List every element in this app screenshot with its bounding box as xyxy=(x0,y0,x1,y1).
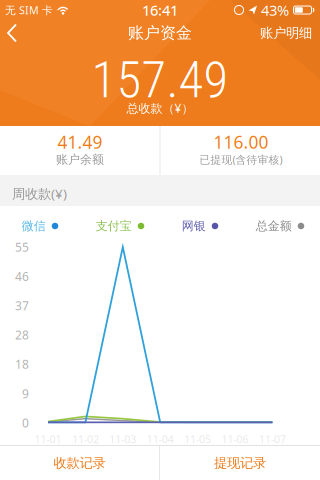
staticText: 11-03 xyxy=(109,432,136,446)
staticText: 55 xyxy=(15,239,29,255)
staticText: 总收款（¥） xyxy=(126,100,193,116)
staticText: 37 xyxy=(15,298,29,313)
button[interactable]: 提现记录 xyxy=(160,446,320,480)
staticText: 微信 xyxy=(22,219,46,233)
staticText: 收款记录 xyxy=(53,455,105,471)
staticText: 提现记录 xyxy=(214,455,266,471)
staticText: 43% xyxy=(261,0,289,20)
button[interactable]: 账户明细 xyxy=(260,25,312,41)
button[interactable]: 收款记录 xyxy=(0,446,159,480)
staticText: 11-05 xyxy=(184,432,211,446)
staticText: 账户资金 xyxy=(128,23,192,43)
staticText: 已提现(含待审核) xyxy=(199,152,282,167)
button[interactable] xyxy=(6,23,18,42)
staticText: 41.49 xyxy=(57,130,102,153)
staticText: 9 xyxy=(22,385,29,401)
staticText: 16:41 xyxy=(142,0,178,20)
staticText: 账户明细 xyxy=(260,25,312,41)
staticText: 总金额 xyxy=(256,219,292,233)
staticText: 11-02 xyxy=(72,432,99,446)
staticText: 支付宝 xyxy=(96,219,132,233)
staticText: 11-01 xyxy=(34,432,61,446)
staticText: 周收款(¥) xyxy=(12,185,67,202)
staticText: 11-07 xyxy=(259,432,286,446)
staticText: 46 xyxy=(15,268,29,284)
staticText: 11-06 xyxy=(221,432,248,446)
staticText: 11-04 xyxy=(147,432,174,446)
staticText: 157.49 xyxy=(91,50,228,110)
staticText: 18 xyxy=(15,356,29,372)
staticText: 无 SIM 卡 xyxy=(5,3,53,17)
staticText: 0 xyxy=(22,415,29,431)
staticText: 网银 xyxy=(182,219,206,233)
staticText: 账户余额 xyxy=(56,152,104,167)
staticText: 28 xyxy=(15,327,29,343)
staticText: 116.00 xyxy=(213,130,268,153)
